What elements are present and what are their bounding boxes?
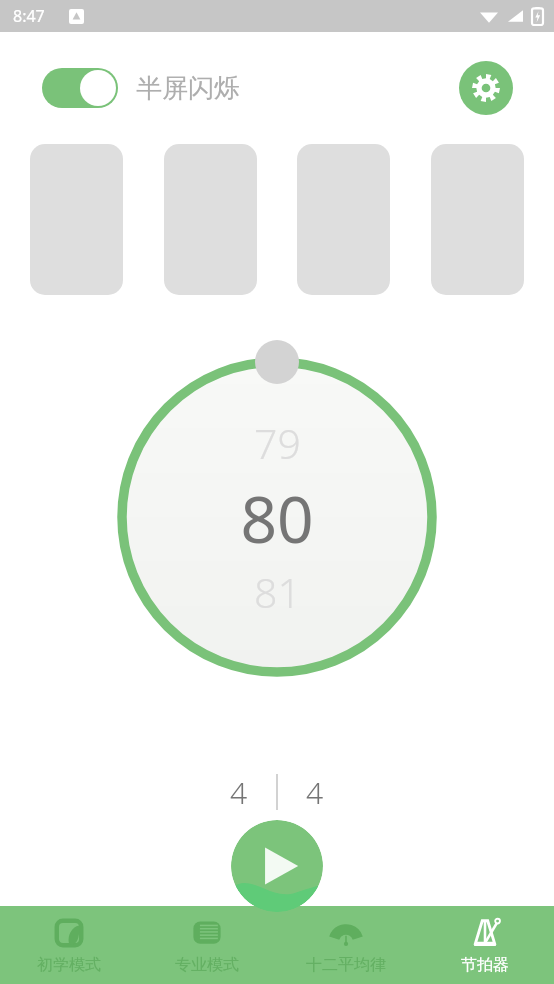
button[interactable]: 半屏闪烁 <box>42 68 240 108</box>
button[interactable]: 节拍器 <box>415 906 554 984</box>
staticText: 4 <box>306 772 324 813</box>
staticText: 8:47 <box>13 5 45 27</box>
staticText: 节拍器 <box>461 955 509 975</box>
button[interactable]: Settings <box>459 61 513 115</box>
staticText: 4 <box>230 772 248 813</box>
staticText: 79 <box>254 415 301 471</box>
button[interactable]: Beat 3 <box>297 144 390 295</box>
staticText: 专业模式 <box>175 955 239 975</box>
button[interactable]: Beat 4 <box>431 144 524 295</box>
button[interactable]: 专业模式 <box>138 906 276 984</box>
button[interactable]: 4 <box>278 768 352 816</box>
staticText: 半屏闪烁 <box>136 72 240 105</box>
staticText: 80 <box>240 475 314 562</box>
staticText: 81 <box>254 564 301 620</box>
staticText: 初学模式 <box>37 955 101 975</box>
staticText: 十二平均律 <box>306 955 386 975</box>
button[interactable]: 4 <box>202 768 276 816</box>
button[interactable]: Play <box>231 820 323 912</box>
button[interactable]: 初学模式 <box>0 906 138 984</box>
button[interactable]: 十二平均律 <box>276 906 415 984</box>
button[interactable]: Beat 1 <box>30 144 123 295</box>
button[interactable]: Beat 2 <box>164 144 257 295</box>
button[interactable]: 79 <box>99 339 455 695</box>
